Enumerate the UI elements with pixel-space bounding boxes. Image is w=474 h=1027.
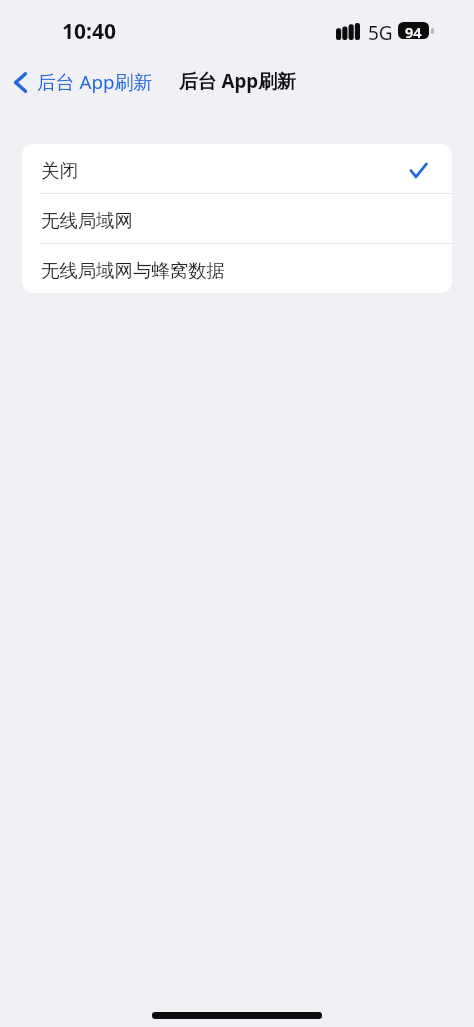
button[interactable]: 无线局域网与蜂窝数据 [22,244,452,293]
staticText: 5G [368,20,393,46]
button[interactable]: Back [0,64,163,100]
staticText: 关闭 [41,159,78,182]
staticText: 后台 App刷新 [179,68,296,94]
staticText: 无线局域网 [41,209,133,232]
staticText: 10:40 [62,17,116,46]
button[interactable]: 关闭 [22,144,452,193]
button[interactable]: 无线局域网 [22,194,452,243]
staticText: 无线局域网与蜂窝数据 [41,259,225,282]
staticText: 后台 App刷新 [37,69,153,95]
staticText: 94 [405,22,422,39]
other: Back [14,72,27,93]
